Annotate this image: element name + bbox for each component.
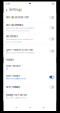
staticText: Feedback bbox=[6, 59, 14, 61]
staticText: 9:41 bbox=[6, 3, 10, 5]
staticText: More accessibility settings bbox=[6, 97, 27, 99]
staticText: Focus indicator bbox=[6, 65, 21, 67]
staticText: Auto tap selected item bbox=[6, 16, 29, 19]
staticText: On bbox=[6, 68, 8, 70]
button[interactable]: Ignore repeated screen taps bbox=[3, 45, 56, 57]
button[interactable]: Voice feedback bbox=[3, 83, 56, 92]
button[interactable]: Focus indicator bbox=[3, 63, 56, 72]
staticText: cursor stops moving bbox=[6, 41, 22, 43]
staticText: Tap symbols on the screen when the bbox=[6, 38, 33, 40]
staticText: Select accessibility sounds bbox=[6, 78, 26, 80]
button[interactable]: Auto tap selected item bbox=[3, 13, 56, 22]
staticText: Ignore repeated screen taps bbox=[6, 49, 33, 51]
staticText: Voice feedback bbox=[6, 86, 20, 88]
staticText: ‹ bbox=[6, 7, 8, 12]
staticText: Ignore repeated taps in the same place bbox=[6, 52, 35, 54]
button[interactable]: Manage more options bbox=[3, 92, 56, 101]
button[interactable]: Auto tap keyboard bbox=[3, 22, 56, 33]
staticText: Sound feedback bbox=[6, 75, 20, 77]
staticText: Tap keyboard keys automatically when bbox=[6, 27, 35, 29]
staticText: Auto tap keyboard bbox=[6, 24, 23, 26]
staticText: 5G bbox=[52, 3, 54, 5]
button[interactable]: Sound feedback bbox=[3, 72, 56, 83]
staticText: Manage more options bbox=[6, 94, 27, 96]
staticText: the cursor hovers over them bbox=[6, 29, 29, 31]
staticText: Tap symbols bbox=[6, 35, 18, 38]
staticText: Settings bbox=[9, 8, 21, 11]
button[interactable]: Tap symbols bbox=[3, 33, 56, 45]
button[interactable]: Back bbox=[6, 7, 8, 12]
